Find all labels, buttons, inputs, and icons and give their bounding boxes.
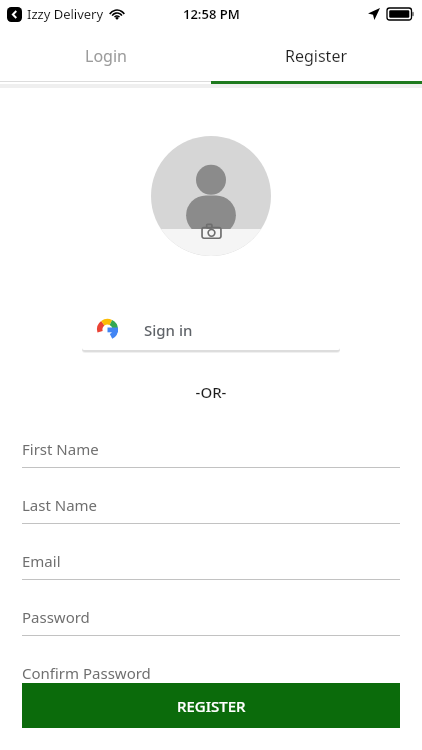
button[interactable]: Confirm Password <box>22 655 400 699</box>
staticText: First Name <box>22 439 99 459</box>
button[interactable]: Email <box>22 543 400 587</box>
button[interactable]: First Name <box>22 431 400 475</box>
staticText: -OR- <box>0 382 422 402</box>
button[interactable]: Register <box>211 28 422 83</box>
staticText: Izzy Delivery <box>27 5 104 23</box>
staticText: Sign in <box>144 320 193 340</box>
staticText: Email <box>22 551 61 571</box>
button[interactable]: REGISTER <box>22 683 400 728</box>
staticText: Last Name <box>22 495 98 515</box>
button[interactable]: Last Name <box>22 487 400 531</box>
button[interactable]: Sign in <box>82 309 340 350</box>
staticText: 12:58 PM <box>183 5 240 23</box>
button[interactable]: Password <box>22 599 400 643</box>
button[interactable]: Login <box>0 28 211 83</box>
staticText: REGISTER <box>177 696 246 716</box>
staticText: Login <box>85 45 127 67</box>
staticText: Password <box>22 607 90 627</box>
staticText: Confirm Password <box>22 663 151 683</box>
button[interactable]: Change profile photo <box>194 214 228 248</box>
staticText: Register <box>285 45 348 67</box>
